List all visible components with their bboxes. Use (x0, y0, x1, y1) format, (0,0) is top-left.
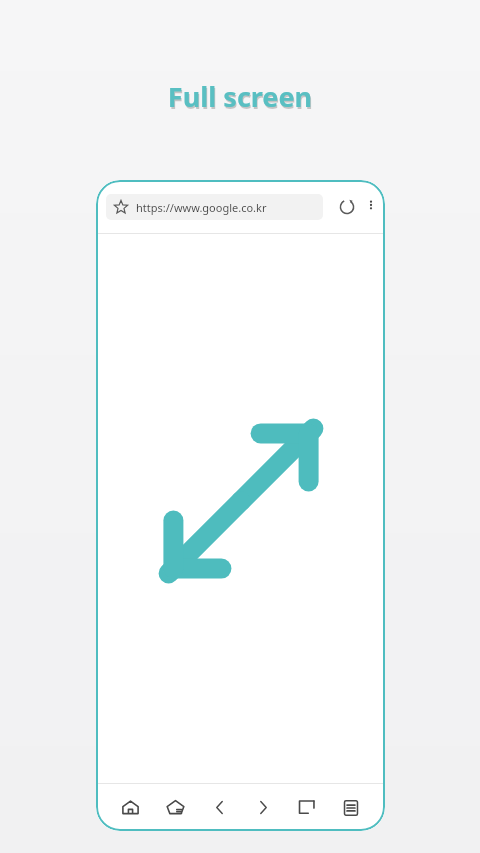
staticText: Full screen (1, 80, 480, 117)
button[interactable]: https://www.google.co.kr (106, 194, 323, 220)
button[interactable]: Forward (241, 784, 285, 831)
button[interactable]: Home (108, 784, 153, 831)
button[interactable]: Menu (329, 784, 373, 831)
button[interactable]: Full screen (161, 421, 321, 581)
staticText: Full screen (0, 78, 480, 115)
button[interactable]: Tabs (285, 784, 329, 831)
button[interactable]: Reload (333, 193, 361, 221)
button[interactable]: Bookmarks (153, 784, 197, 831)
button[interactable]: More options (365, 194, 377, 220)
button[interactable]: Back (197, 784, 241, 831)
staticText: https://www.google.co.kr (136, 200, 267, 215)
